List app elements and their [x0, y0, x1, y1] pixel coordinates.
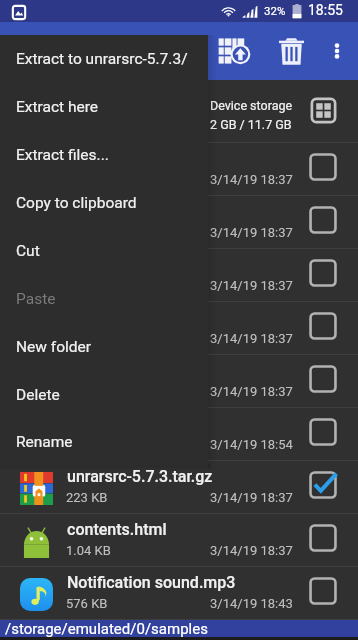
staticText: 576 KB [66, 596, 108, 611]
staticText: 3/14/19 18:54 [210, 437, 293, 452]
button[interactable]: Delete [0, 371, 208, 419]
button[interactable]: Download [0, 196, 358, 248]
staticText: 32% [264, 4, 286, 17]
staticText: Delete [16, 386, 60, 404]
button[interactable]: Select Music [294, 302, 352, 354]
button[interactable]: Select Documents [294, 143, 352, 195]
button[interactable]: Select Download [294, 196, 352, 248]
button[interactable]: New folder [0, 323, 208, 371]
button[interactable]: Select Notification sound.mp3 [294, 567, 352, 619]
staticText: 3/14/19 18:37 [210, 490, 293, 505]
button[interactable]: Copy to clipboard [0, 179, 208, 227]
staticText: 1.04 KB [66, 543, 111, 558]
button[interactable]: Device storage [0, 80, 358, 142]
button[interactable]: Rename [0, 419, 208, 465]
staticText: 3/14/19 18:37 [210, 225, 293, 240]
button[interactable]: Music [0, 302, 358, 354]
staticText: 3/14/19 18:37 [210, 278, 293, 293]
button[interactable]: Select Movies [294, 249, 352, 301]
button[interactable]: Movies [0, 249, 358, 301]
button[interactable]: Select Pictures [294, 355, 352, 407]
staticText: 3/14/19 18:43 [210, 596, 293, 611]
staticText: unrarsrc-5.7.3.tar.gz [67, 467, 213, 486]
button[interactable]: unrarsrc-5.7.3.tar.gz [0, 461, 358, 513]
button[interactable]: Select unrarsrc-5.7.3.tar.gz [294, 461, 352, 513]
button[interactable]: Grid view [294, 80, 352, 142]
button[interactable]: Notification sound.mp3 [0, 567, 358, 619]
staticText: 2 GB / 11.7 GB [210, 117, 292, 132]
button[interactable]: /storage/emulated/0/samples [0, 620, 358, 637]
staticText: 3/14/19 18:37 [210, 172, 293, 187]
button[interactable]: Select contents.html [294, 514, 352, 566]
staticText: Copy to clipboard [16, 194, 137, 212]
staticText: /storage/emulated/0/samples [5, 620, 208, 637]
button[interactable]: Cut [0, 227, 208, 275]
staticText: Documents [67, 149, 149, 168]
button[interactable]: Documents [0, 143, 358, 195]
button[interactable]: Extract files... [0, 131, 208, 179]
button[interactable]: Delete [267, 27, 315, 75]
staticText: 18:55 [308, 2, 343, 18]
staticText: 3/14/19 18:37 [210, 331, 293, 346]
button[interactable]: Select unrarsrc-5.7.3 [294, 408, 352, 460]
staticText: contents.html [67, 520, 167, 539]
button[interactable]: Paste [0, 275, 208, 323]
staticText: Download [67, 202, 139, 221]
staticText: Cut [16, 242, 40, 260]
staticText: New folder [16, 338, 91, 356]
staticText: Notification sound.mp3 [67, 573, 236, 592]
button[interactable]: Pictures [0, 355, 358, 407]
staticText: Rename [16, 433, 73, 451]
button[interactable]: Extract here [0, 83, 208, 131]
staticText: Device storage [210, 98, 293, 113]
staticText: 223 KB [66, 490, 108, 505]
staticText: 3/14/19 18:37 [210, 543, 293, 558]
button[interactable]: Extract [210, 27, 258, 75]
button[interactable]: Extract to unrarsrc-5.7.3/ [0, 35, 208, 83]
staticText: 3/14/19 18:37 [210, 384, 293, 399]
button[interactable]: More options [316, 30, 358, 72]
button[interactable]: unrarsrc-5.7.3 [0, 408, 358, 460]
staticText: Extract here [16, 98, 99, 116]
staticText: Extract to unrarsrc-5.7.3/ [16, 50, 188, 68]
button[interactable]: contents.html [0, 514, 358, 566]
staticText: Extract files... [16, 146, 109, 164]
staticText: Paste [16, 290, 56, 308]
